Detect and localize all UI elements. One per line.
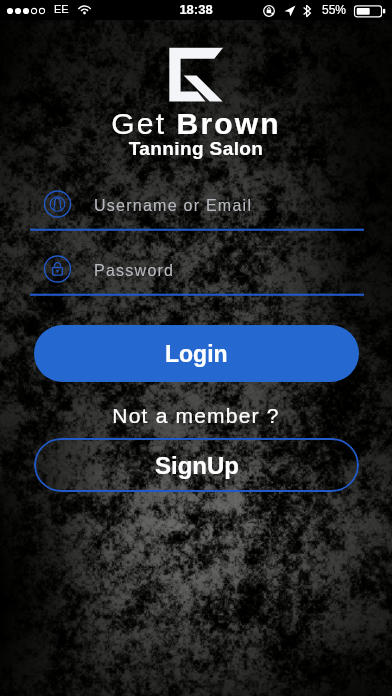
button[interactable]: SignUp [34, 438, 359, 492]
staticText: Not a member ? [0, 404, 392, 427]
staticText: SignUp [155, 452, 239, 479]
staticText: EE [54, 3, 69, 15]
staticText: 55% [322, 3, 347, 16]
staticText: Password [94, 262, 175, 280]
staticText: Tanning Salon [0, 138, 392, 159]
staticText: Login [165, 341, 228, 367]
staticText: Get Brown [0, 107, 392, 141]
staticText: 18:38 [0, 2, 392, 17]
button[interactable]: Login [34, 325, 359, 382]
button[interactable]: Password [0, 253, 392, 299]
staticText: Username or Email [94, 197, 253, 215]
button[interactable]: Username or Email [0, 188, 392, 234]
